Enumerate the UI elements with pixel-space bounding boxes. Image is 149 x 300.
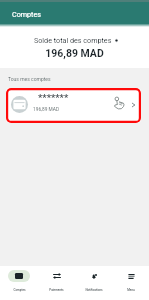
staticText: *******: [38, 92, 69, 103]
staticText: 196,89 MAD: [0, 47, 149, 59]
staticText: 196,89 MAD: [33, 107, 60, 113]
staticText: Tous mes comptes: [8, 76, 51, 82]
other: Tap to act: [114, 97, 125, 109]
staticText: Solde total des comptes: [34, 36, 112, 44]
button[interactable]: Menu: [112, 266, 149, 292]
staticText: Menu: [127, 288, 135, 292]
staticText: Notifications: [85, 288, 103, 292]
button[interactable]: Comptes: [0, 266, 38, 292]
button[interactable]: Paiements: [38, 266, 75, 292]
button[interactable]: Notifications: [75, 266, 112, 292]
staticText: Comptes: [13, 288, 26, 292]
button[interactable]: *******: [6, 88, 141, 123]
staticText: Comptes: [12, 10, 41, 18]
staticText: Paiements: [49, 288, 64, 292]
